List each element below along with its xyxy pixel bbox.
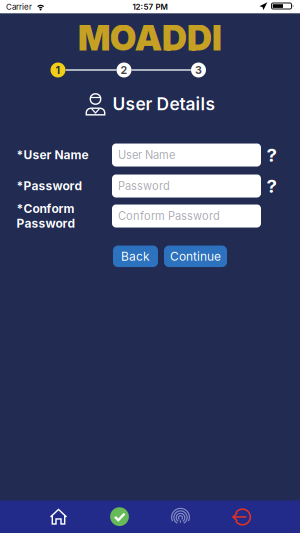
button[interactable]: Verify xyxy=(89,500,150,533)
button[interactable]: Help xyxy=(266,144,276,166)
staticText: ? xyxy=(266,175,276,197)
staticText: User Name xyxy=(118,148,175,162)
staticText: 3 xyxy=(195,63,202,76)
button[interactable]: Fingerprint xyxy=(150,500,211,533)
button[interactable]: Help xyxy=(266,175,276,197)
staticText: ? xyxy=(266,144,276,166)
staticText: 12:57 PM xyxy=(132,2,167,12)
staticText: *Conform Password xyxy=(16,201,75,230)
staticText: *User Name xyxy=(16,148,88,162)
staticText: Carrier xyxy=(6,2,32,12)
staticText: MOADDI xyxy=(78,17,222,59)
staticText: 1 xyxy=(55,63,60,76)
staticText: *Password xyxy=(16,179,82,193)
button[interactable]: Continue xyxy=(164,246,227,267)
button[interactable]: Back xyxy=(113,246,158,267)
button[interactable]: Conform Password xyxy=(112,204,261,227)
staticText: User Details xyxy=(112,93,215,114)
button[interactable]: Home xyxy=(28,500,89,533)
staticText: Continue xyxy=(170,249,221,263)
staticText: Password xyxy=(118,179,170,193)
button[interactable]: User Name xyxy=(112,143,261,166)
staticText: Back xyxy=(121,249,150,263)
staticText: 2 xyxy=(120,63,127,76)
staticText: Conform Password xyxy=(118,209,220,223)
button[interactable]: Log out xyxy=(211,500,272,533)
button[interactable]: Password xyxy=(112,174,261,197)
